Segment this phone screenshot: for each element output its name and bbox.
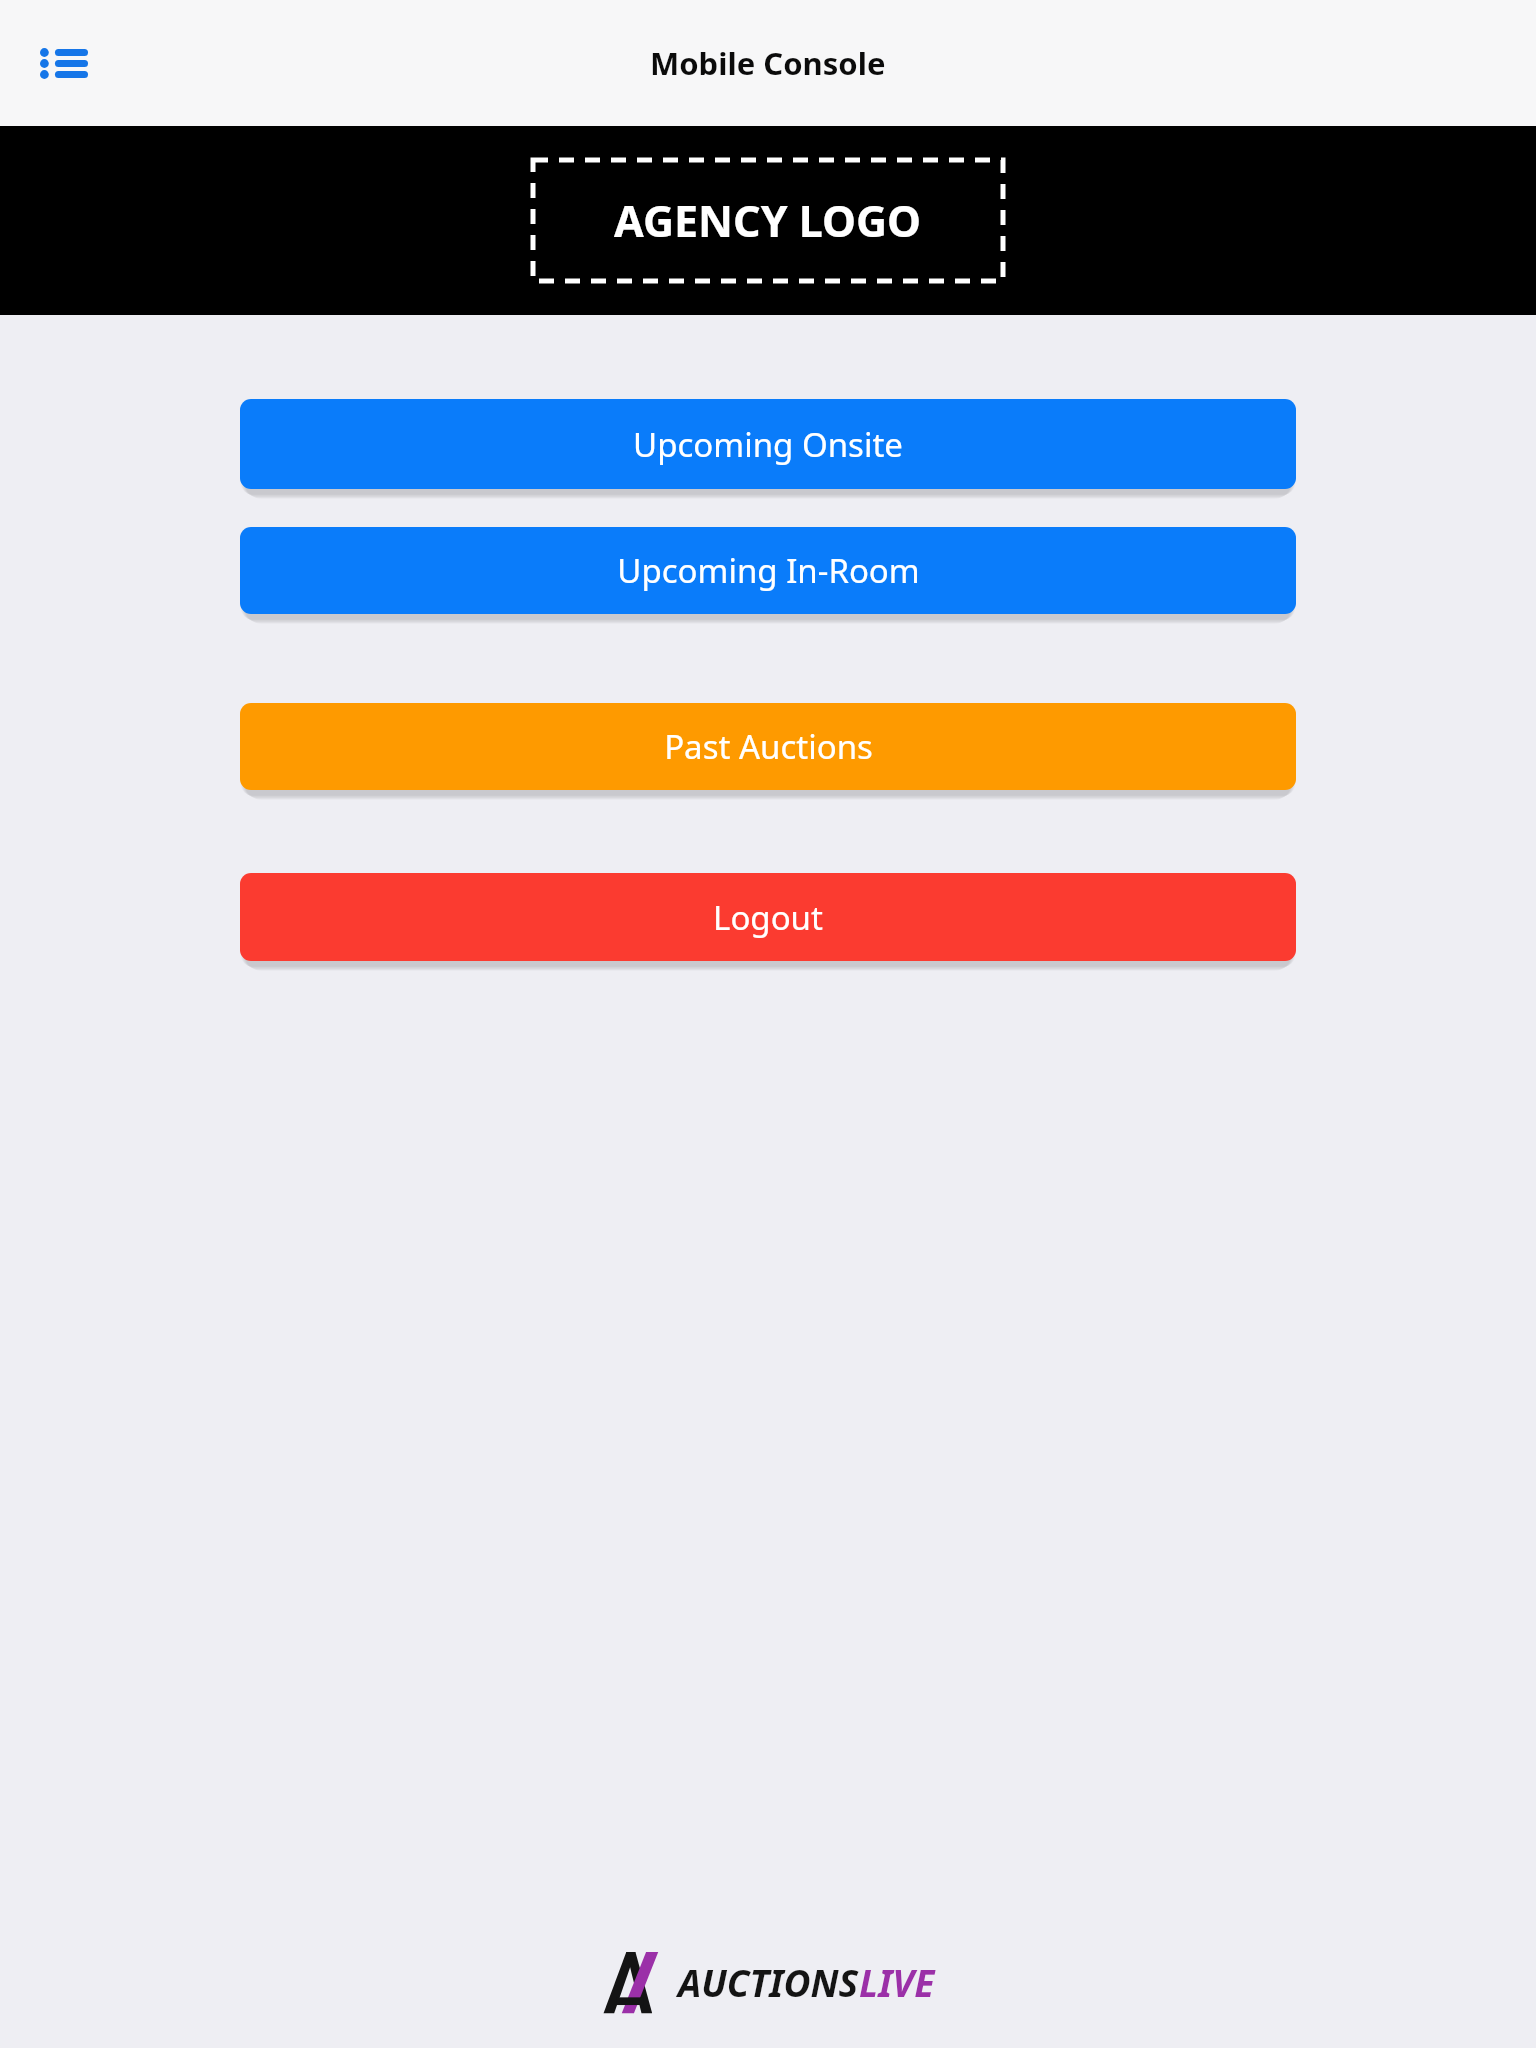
button[interactable]: Past Auctions	[240, 703, 1296, 790]
staticText: Mobile Console	[650, 42, 886, 84]
staticText: LIVE	[859, 1957, 935, 2007]
staticText: Upcoming In-Room	[617, 548, 920, 593]
staticText: AGENCY LOGO	[614, 191, 922, 250]
staticText: Logout	[713, 895, 823, 940]
button[interactable]: Logout	[240, 873, 1296, 961]
staticText: Upcoming Onsite	[633, 422, 903, 467]
staticText: AUCTIONS	[678, 1957, 859, 2007]
button[interactable]: Upcoming In-Room	[240, 527, 1296, 614]
button[interactable]: Upcoming Onsite	[240, 399, 1296, 489]
staticText: Past Auctions	[664, 724, 873, 769]
button[interactable]: Open navigation menu	[22, 21, 106, 105]
